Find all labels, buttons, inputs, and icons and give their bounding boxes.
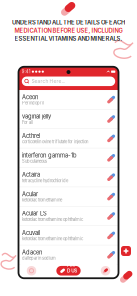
button[interactable]: Adacen bbox=[18, 245, 118, 265]
staticText: For all bbox=[22, 120, 33, 125]
staticText: Subcutaneous bbox=[22, 159, 47, 164]
staticText: Adacen bbox=[22, 249, 42, 256]
staticText: ESSENTIAL VITAMINS AND MINERALS. bbox=[14, 35, 122, 42]
staticText: ketorolac tromethamine bbox=[22, 198, 62, 203]
button[interactable]: vaginal jelly bbox=[18, 110, 118, 129]
staticText: FIND US bbox=[67, 262, 77, 279]
button[interactable]: Acular LS bbox=[18, 207, 118, 226]
button[interactable]: Home bbox=[24, 264, 38, 278]
staticText: ketorolac tromethamine ophthalmic bbox=[22, 217, 83, 222]
staticText: Acular LS bbox=[22, 210, 47, 217]
staticText: MEDICATION BEFORE USE, INCLUDING bbox=[14, 27, 122, 34]
button[interactable]: Actaira bbox=[18, 168, 118, 187]
button[interactable]: Acular bbox=[18, 187, 118, 207]
button[interactable]: interferon gamma-1b bbox=[18, 148, 118, 168]
button[interactable]: Acthrel bbox=[18, 129, 118, 148]
staticText: Search Here... bbox=[32, 78, 65, 84]
staticText: interferon gamma-1b bbox=[22, 152, 77, 159]
staticText: Acthrel bbox=[22, 132, 40, 139]
button[interactable]: FIND US bbox=[56, 266, 81, 276]
staticText: UNDERSTAND ALL THE DETAILS OF EACH bbox=[12, 19, 125, 26]
staticText: tetracycline hydrochloride bbox=[22, 178, 68, 183]
button[interactable]: Acuvail bbox=[18, 226, 118, 245]
staticText: Actaira bbox=[22, 171, 40, 178]
staticText: ketorolac tromethamine ophthalmic bbox=[22, 236, 83, 241]
staticText: Acular bbox=[22, 191, 38, 197]
staticText: Perindopril bbox=[22, 101, 44, 106]
staticText: 9:41 bbox=[22, 69, 31, 74]
button[interactable]: Medicines bbox=[98, 264, 112, 278]
staticText: corticorelin ovine triflutate for inject… bbox=[22, 139, 88, 144]
staticText: Acuvail bbox=[22, 229, 40, 236]
button[interactable]: Search Here... bbox=[18, 77, 118, 90]
staticText: dalteparin sodium bbox=[22, 256, 56, 261]
button[interactable]: Aceon bbox=[18, 90, 118, 110]
staticText: vaginal jelly bbox=[22, 113, 51, 120]
staticText: Aceon bbox=[22, 94, 38, 100]
